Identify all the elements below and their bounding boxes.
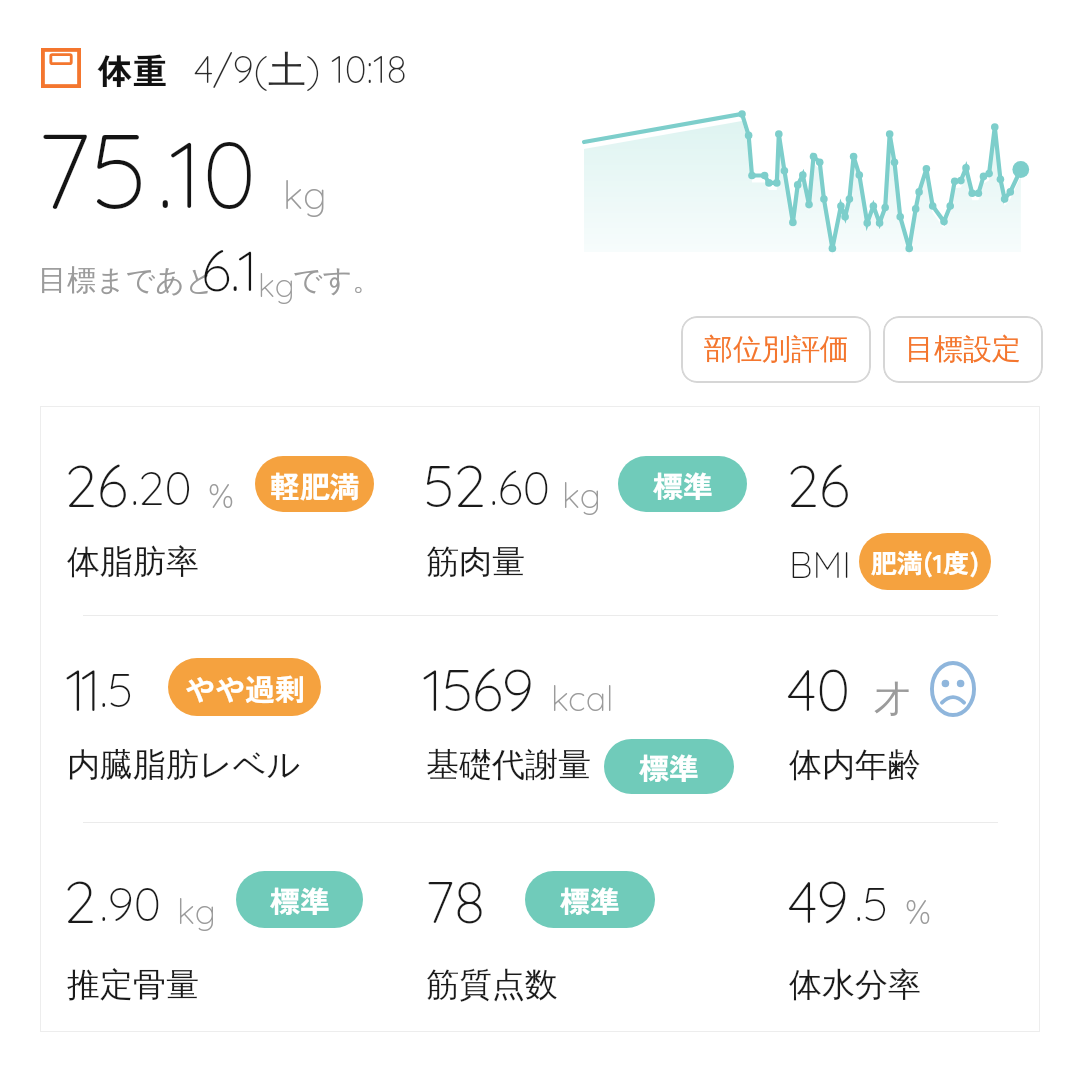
staticText: kg [258, 265, 295, 305]
staticText: kcal [551, 677, 614, 720]
button[interactable]: 目標設定 [883, 316, 1043, 383]
staticText: やや過剰 [185, 666, 305, 709]
staticText: 部位別評価 [704, 331, 849, 368]
staticText: 筋質点数 [426, 964, 558, 1006]
staticText: 26 [65, 449, 128, 522]
staticText: 肥満(1度) [871, 543, 980, 581]
staticText: 才 [874, 676, 910, 721]
staticText: 78 [425, 865, 486, 938]
staticText: .90 [100, 874, 162, 933]
staticText: 目標まであと [38, 262, 215, 299]
staticText: 体内年齢 [789, 744, 921, 786]
staticText: 軽肥満 [270, 463, 360, 506]
staticText: 2 [64, 865, 96, 938]
staticText: 体重 [97, 43, 168, 94]
staticText: .60 [490, 458, 551, 517]
staticText: 49 [788, 865, 849, 938]
staticText: 標準 [639, 745, 699, 788]
staticText: 標準 [560, 878, 620, 921]
button[interactable]: 部位別評価 [681, 316, 871, 383]
other: Weight scale [41, 48, 81, 88]
staticText: .10 [158, 116, 257, 231]
staticText: % [208, 474, 234, 517]
staticText: 11 [65, 653, 97, 726]
staticText: 体脂肪率 [67, 541, 199, 583]
staticText: .20 [131, 458, 192, 517]
other: Body age rating [930, 661, 976, 717]
staticText: 目標設定 [905, 331, 1021, 368]
staticText: .5 [100, 660, 133, 719]
staticText: 26 [787, 449, 850, 522]
staticText: 1569 [422, 653, 533, 726]
staticText: 内臓脂肪レベル [67, 744, 301, 786]
staticText: 筋肉量 [426, 541, 525, 583]
staticText: 標準 [653, 463, 713, 506]
staticText: % [905, 890, 931, 933]
staticText: 75 [37, 103, 147, 236]
staticText: 4/9(土) 10:18 [194, 45, 407, 94]
staticText: kg [283, 171, 327, 219]
staticText: 6.1 [201, 235, 258, 305]
staticText: BMI [789, 542, 851, 587]
staticText: 推定骨量 [67, 964, 199, 1006]
staticText: です。 [293, 262, 382, 299]
staticText: 体水分率 [789, 964, 921, 1006]
staticText: 標準 [270, 878, 330, 921]
staticText: .5 [855, 874, 888, 933]
staticText: 40 [787, 653, 851, 726]
staticText: 基礎代謝量 [426, 744, 591, 786]
staticText: kg [562, 474, 601, 517]
staticText: 52 [423, 449, 486, 522]
staticText: kg [177, 890, 216, 933]
